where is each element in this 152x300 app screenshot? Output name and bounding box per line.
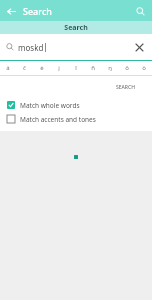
staticText: Search [64, 23, 88, 33]
button[interactable]: SEARCH [105, 80, 145, 95]
staticText: ñ [91, 64, 95, 72]
staticText: Match whole words [20, 101, 80, 110]
button[interactable]: ī [67, 61, 84, 75]
staticText: ä [6, 64, 10, 72]
staticText: į [58, 64, 60, 72]
button[interactable]: Match whole words [0, 98, 152, 112]
button[interactable]: ŋ [101, 61, 118, 75]
staticText: Search [23, 5, 52, 17]
button[interactable]: č [16, 61, 33, 75]
staticText: ô [125, 64, 129, 72]
staticText: moskd [18, 42, 44, 53]
button[interactable]: Back [3, 3, 19, 19]
staticText: Match accents and tones [20, 115, 96, 124]
button[interactable]: Search [132, 3, 148, 19]
staticText: ī [75, 64, 77, 72]
button[interactable]: ö [135, 61, 152, 75]
staticText: č [23, 64, 26, 72]
button[interactable]: ñ [84, 61, 101, 75]
button[interactable]: ä [0, 61, 16, 75]
staticText: SEARCH [116, 84, 135, 91]
button[interactable]: Clear [130, 38, 148, 56]
button[interactable]: moskd [0, 34, 152, 60]
button[interactable]: ô [118, 61, 135, 75]
staticText: ö [142, 64, 146, 72]
button[interactable]: Match accents and tones [0, 112, 152, 126]
staticText: ė [40, 64, 44, 72]
button[interactable]: į [50, 61, 67, 75]
button[interactable]: Search [0, 21, 152, 34]
staticText: ŋ [108, 64, 112, 72]
button[interactable]: ė [33, 61, 50, 75]
